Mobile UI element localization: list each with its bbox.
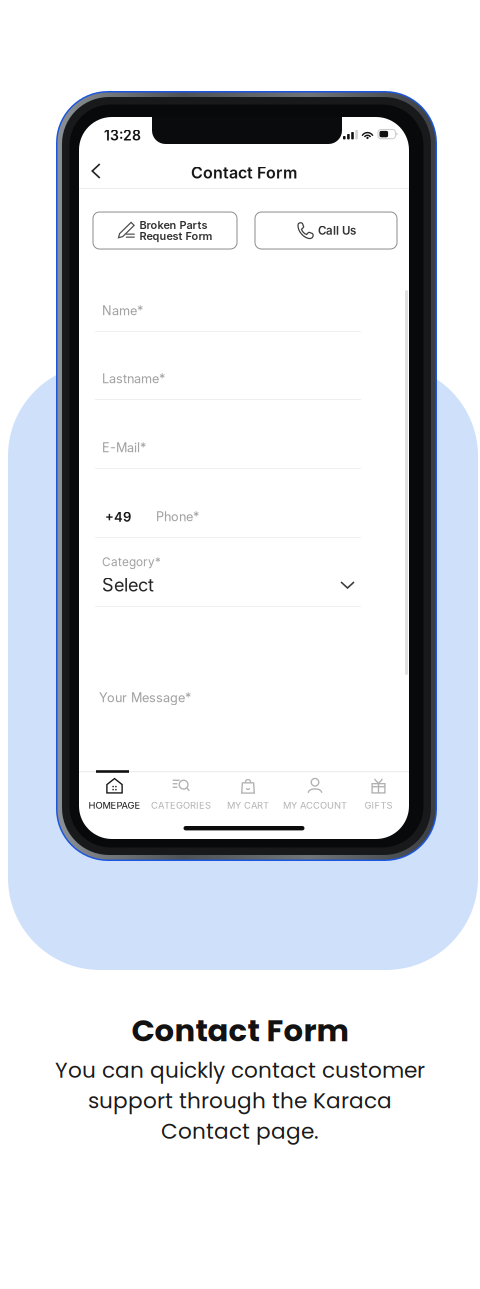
staticText: support through the Karaca [88,1086,392,1116]
staticText: HOMEPAGE [88,800,140,811]
staticText: You can quickly contact customer [55,1055,425,1085]
staticText: Call Us [318,224,356,237]
button[interactable]: MY ACCOUNT [281,773,348,817]
staticText: Contact page. [161,1116,319,1146]
staticText: +49 [105,509,131,525]
staticText: MY CART [227,800,269,811]
staticText: GIFTS [364,800,392,811]
staticText: Contact Form [191,163,297,182]
button[interactable]: Back [80,154,112,188]
staticText: Phone* [156,509,199,524]
button[interactable]: MY CART [214,773,281,817]
staticText: 13:28 [104,127,141,144]
staticText: Your Message* [99,690,191,705]
button[interactable]: GIFTS [348,773,408,817]
button[interactable]: Broken Parts [93,212,237,249]
button[interactable]: CATEGORIES [147,773,214,817]
staticText: CATEGORIES [151,800,211,811]
staticText: Contact Form [131,1009,348,1052]
staticText: E-Mail* [102,440,146,455]
staticText: MY ACCOUNT [283,800,347,811]
staticText: Broken Parts [139,218,207,232]
button[interactable]: HOMEPAGE [81,773,147,817]
button[interactable]: Call Us [255,212,397,249]
staticText: Request Form [139,229,212,243]
button[interactable]: Select [102,573,354,597]
staticText: Lastname* [102,371,165,386]
staticText: Category* [102,555,161,569]
staticText: Name* [102,303,143,318]
staticText: Select [102,574,154,596]
